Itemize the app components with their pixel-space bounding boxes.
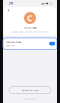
button[interactable]: Remove this pack [9, 87, 51, 94]
staticText: ‹ [7, 5, 9, 14]
staticText: Child Pack [23, 26, 36, 29]
button[interactable]: Back [6, 7, 11, 12]
staticText: Invisible mode [6, 41, 21, 43]
staticText: Manage apps, content and screen time [11, 30, 49, 33]
staticText: 9:41 [9, 2, 13, 5]
staticText: C [27, 12, 33, 24]
button[interactable]: Invisible mode [3, 38, 57, 49]
staticText: Remove this pack [21, 88, 38, 92]
staticText: Hide activity [6, 44, 15, 47]
